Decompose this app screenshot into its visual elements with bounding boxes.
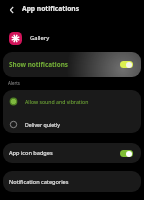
button[interactable]: Deliver quietly <box>3 113 141 133</box>
button[interactable]: Toggle <box>120 61 133 68</box>
staticText: Notification categories <box>9 178 69 186</box>
staticText: App notifications <box>22 4 80 13</box>
staticText: Allow sound and vibration <box>25 98 89 105</box>
button[interactable]: Gallery <box>0 29 144 47</box>
staticText: Deliver quietly <box>25 121 60 128</box>
button[interactable]: Back <box>4 2 20 18</box>
staticText: Alerts <box>8 80 20 86</box>
button[interactable]: Notification categories <box>3 171 141 192</box>
staticText: Gallery <box>30 34 50 42</box>
button[interactable]: App icon badges <box>3 143 141 163</box>
staticText: Show notifications <box>9 60 69 69</box>
button[interactable]: Toggle <box>120 150 133 157</box>
staticText: App icon badges <box>9 149 53 157</box>
button[interactable]: Show notifications <box>3 52 141 77</box>
button[interactable]: Allow sound and vibration <box>3 90 141 112</box>
